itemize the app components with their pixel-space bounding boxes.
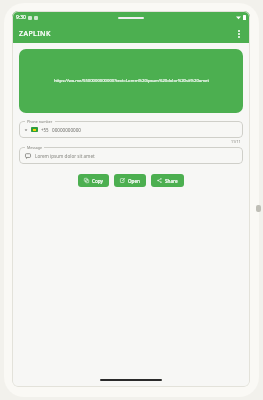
staticText: Lorem ipsum dolor sit amet bbox=[35, 153, 95, 159]
staticText: 11/11 bbox=[231, 139, 241, 144]
staticText: Open bbox=[128, 178, 140, 184]
staticText: Phone number bbox=[27, 119, 53, 124]
button[interactable] bbox=[19, 121, 243, 138]
staticText: Copy bbox=[92, 178, 103, 184]
button[interactable] bbox=[19, 147, 243, 164]
button[interactable]: Open bbox=[114, 174, 146, 187]
button[interactable]: More options bbox=[231, 26, 247, 42]
staticText: ZAPLINK bbox=[19, 29, 51, 39]
staticText: Message bbox=[27, 145, 42, 150]
button[interactable]: https://wa.me/5500000000000?text=Lorem%2… bbox=[19, 49, 243, 113]
button[interactable]: Copy bbox=[78, 174, 109, 187]
staticText: 00000000000 bbox=[52, 127, 81, 133]
staticText: https://wa.me/5500000000000?text=Lorem%2… bbox=[54, 78, 209, 84]
staticText: 9:30 bbox=[16, 14, 26, 21]
button[interactable]: Share bbox=[151, 174, 184, 187]
staticText: Share bbox=[165, 178, 178, 184]
staticText: +55 bbox=[41, 127, 49, 133]
